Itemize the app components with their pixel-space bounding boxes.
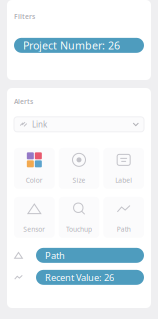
staticText: Link: [32, 119, 47, 130]
staticText: Label: [115, 176, 132, 185]
staticText: Color: [26, 176, 43, 185]
button[interactable]: Sensor: [14, 197, 55, 238]
button[interactable]: Label: [103, 148, 144, 189]
button[interactable]: Color: [14, 148, 55, 189]
button[interactable]: Project Number: 26: [14, 38, 144, 53]
staticText: Sensor: [23, 225, 45, 234]
button[interactable]: Size: [59, 148, 99, 189]
staticText: Recent Value: 26: [45, 271, 114, 284]
staticText: Alerts: [14, 97, 33, 106]
button[interactable]: Path: [103, 197, 144, 238]
staticText: Size: [72, 176, 85, 185]
staticText: Path: [45, 249, 65, 262]
staticText: Touchup: [66, 225, 92, 234]
button[interactable]: Touchup: [59, 197, 99, 238]
staticText: Filters: [14, 12, 35, 21]
staticText: Project Number: 26: [23, 38, 120, 52]
button[interactable]: Path: [36, 248, 144, 263]
button[interactable]: Link: [14, 117, 144, 132]
button[interactable]: Recent Value: 26: [36, 270, 144, 285]
staticText: Path: [117, 225, 131, 234]
